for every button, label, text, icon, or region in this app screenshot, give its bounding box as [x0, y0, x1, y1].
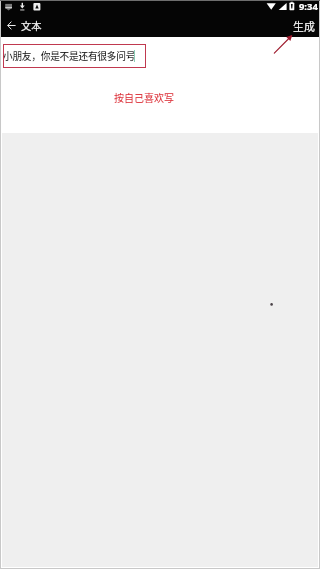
staticText: 9:34	[299, 0, 318, 13]
button[interactable]: Back	[4, 14, 19, 37]
staticText: 生成	[293, 18, 315, 33]
button[interactable]: 生成	[288, 14, 320, 37]
button[interactable]: 小朋友，你是不是还有很多问号	[3, 44, 146, 68]
staticText: 小朋友，你是不是还有很多问号	[3, 49, 136, 63]
staticText: 按自己喜欢写	[114, 90, 174, 104]
staticText: 文本	[21, 18, 42, 33]
